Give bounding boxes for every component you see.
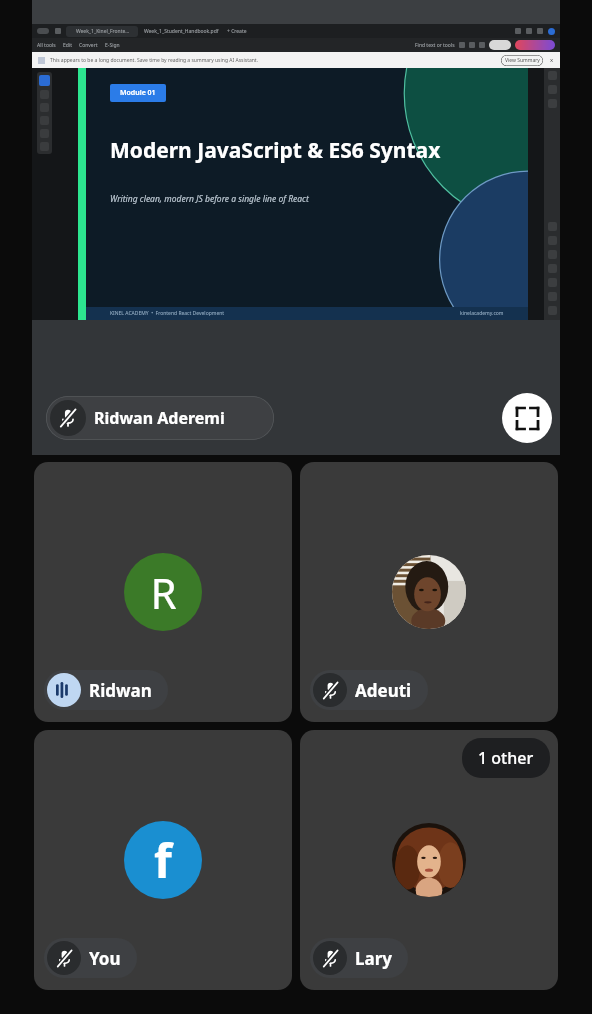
button[interactable]: Adeuti: [313, 670, 412, 710]
staticText: Week_1_Kinel_Fronte...: [76, 28, 130, 35]
staticText: You: [89, 947, 121, 970]
staticText: Convert: [79, 42, 98, 49]
staticText: Module 01: [120, 88, 156, 98]
staticText: Week_1_Student_Handbook.pdf: [144, 28, 219, 35]
staticText: E-Sign: [105, 42, 120, 49]
staticText: kinelacademy.com: [460, 310, 504, 317]
staticText: Writing clean, modern JS before a single…: [110, 193, 309, 205]
staticText: Lary: [355, 947, 392, 970]
staticText: This appears to be a long document. Save…: [50, 57, 258, 64]
staticText: 1 other: [478, 747, 534, 769]
staticText: x: [550, 56, 554, 64]
button[interactable]: Enter full screen: [502, 393, 552, 443]
button[interactable]: You: [47, 938, 121, 978]
staticText: Edit: [63, 42, 72, 49]
staticText: + Create: [227, 28, 247, 35]
staticText: Modern JavaScript & ES6 Syntax: [110, 136, 441, 165]
staticText: f: [154, 829, 172, 892]
staticText: Ridwan Aderemi (Presenting, annot: [94, 407, 258, 429]
staticText: Ridwan: [89, 679, 152, 702]
staticText: All tools: [37, 42, 56, 49]
staticText: Adeuti: [355, 679, 412, 702]
button[interactable]: R: [34, 462, 292, 722]
button[interactable]: Ridwan: [47, 670, 152, 710]
button[interactable]: Week_1_Kinel_Fronte...: [32, 0, 560, 455]
button[interactable]: f: [34, 730, 292, 990]
button[interactable]: Lary: [313, 938, 392, 978]
staticText: KINEL ACADEMY • Frontend React Developme…: [110, 310, 225, 317]
staticText: Find text or tools: [415, 42, 455, 49]
staticText: R: [150, 564, 177, 621]
button[interactable]: Ridwan Aderemi (Presenting, annot: [46, 396, 274, 440]
button[interactable]: Adeuti: [300, 462, 558, 722]
staticText: View Summary: [505, 57, 540, 64]
button[interactable]: 1 other: [300, 730, 558, 990]
